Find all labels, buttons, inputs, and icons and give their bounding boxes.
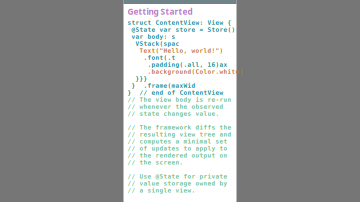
staticText: Text("Hello, world!") [127, 47, 223, 54]
staticText: // of updates to apply to [127, 145, 227, 152]
staticText: // computes a minimal set [127, 138, 227, 145]
staticText: // the screen. [127, 159, 183, 166]
staticText: VStack(spac [127, 40, 179, 47]
staticText: // resulting view tree and [127, 131, 231, 138]
staticText: }}} [127, 75, 147, 82]
staticText: @State var store = Store() [127, 26, 235, 33]
staticText: // The view body is re-run [127, 96, 231, 103]
staticText: } // end of ContentView [127, 89, 223, 96]
staticText: Getting Started [127, 6, 192, 17]
staticText: // state changes value. [127, 110, 219, 117]
staticText: var body: s [127, 33, 175, 40]
staticText: // whenever the observed [127, 103, 223, 110]
staticText: struct ContentView: View { [127, 19, 231, 26]
staticText: .padding(.all, 16)ax [127, 61, 227, 68]
staticText: // value storage owned by [127, 180, 227, 187]
staticText: .font(.t [127, 54, 175, 61]
staticText: } .frame(maxWid [127, 82, 195, 89]
staticText: // a single view. [127, 187, 195, 194]
staticText: // the rendered output on [127, 152, 227, 159]
staticText: .background(Color.white) [127, 68, 243, 75]
staticText: // Use @State for private [127, 173, 227, 180]
staticText: // The framework diffs the [127, 124, 231, 131]
